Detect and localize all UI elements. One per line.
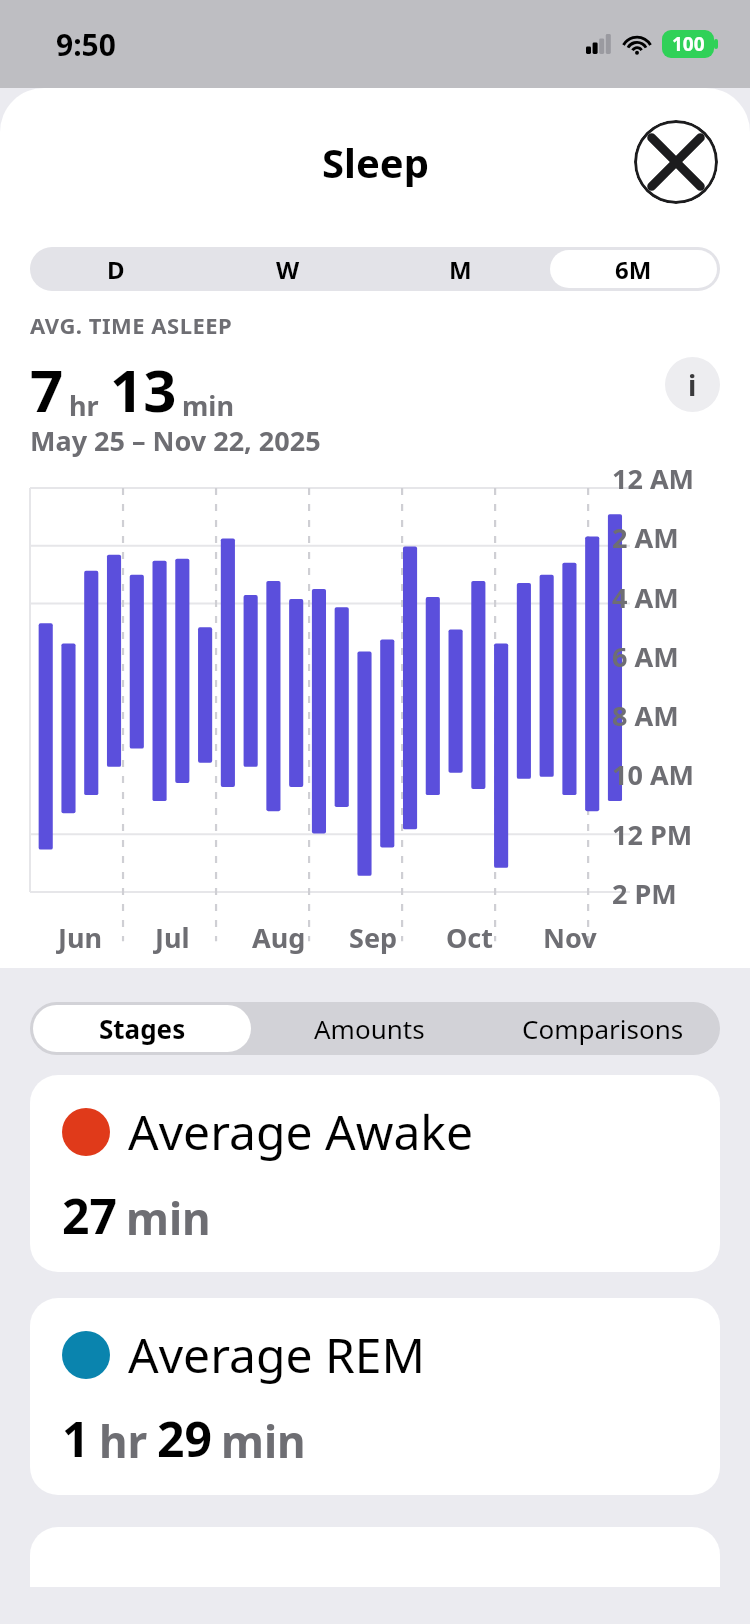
staticText: min: [126, 1188, 211, 1248]
staticText: 29: [157, 1406, 212, 1471]
staticText: Jul: [155, 919, 190, 956]
button[interactable]: Amounts: [254, 1002, 485, 1055]
staticText: 13: [110, 350, 177, 429]
staticText: 27: [62, 1183, 117, 1248]
staticText: Jun: [58, 919, 103, 956]
staticText: 1: [62, 1406, 90, 1471]
staticText: Comparisons: [522, 1011, 684, 1046]
staticText: min: [221, 1411, 306, 1471]
button[interactable]: Info: [665, 357, 720, 412]
staticText: M: [449, 253, 472, 286]
button[interactable]: 6M: [550, 250, 717, 288]
staticText: min: [182, 387, 234, 424]
staticText: 7: [30, 350, 64, 429]
staticText: 100: [672, 31, 705, 57]
staticText: Average Awake: [128, 1099, 474, 1164]
staticText: Nov: [543, 919, 597, 956]
staticText: 10 AM: [612, 756, 695, 793]
button[interactable]: Comparisons: [485, 1002, 720, 1055]
staticText: 12 AM: [612, 460, 695, 497]
staticText: hr: [99, 1411, 148, 1471]
staticText: 12 PM: [612, 816, 693, 853]
staticText: 9:50: [56, 24, 116, 65]
button[interactable]: Close: [634, 120, 718, 204]
staticText: 4 AM: [612, 579, 679, 616]
button[interactable]: Average REM: [30, 1298, 720, 1495]
staticText: AVG. TIME ASLEEP: [30, 310, 233, 340]
button[interactable]: M: [377, 250, 544, 288]
staticText: Stages: [99, 1011, 186, 1046]
staticText: 2 AM: [612, 519, 679, 556]
staticText: Amounts: [314, 1011, 425, 1046]
staticText: Sep: [349, 919, 398, 956]
button[interactable]: Stages: [33, 1005, 251, 1052]
staticText: Sleep: [322, 135, 429, 189]
staticText: 2 PM: [612, 875, 677, 912]
button[interactable]: W: [205, 250, 371, 288]
staticText: W: [276, 253, 300, 286]
staticText: 8 AM: [612, 697, 679, 734]
staticText: i: [688, 366, 697, 404]
staticText: 6 AM: [612, 638, 679, 675]
button[interactable]: D: [33, 250, 199, 288]
staticText: Aug: [252, 919, 306, 956]
staticText: Average REM: [128, 1322, 426, 1387]
staticText: Oct: [446, 919, 494, 956]
button[interactable]: Average Awake: [30, 1075, 720, 1272]
staticText: hr: [69, 387, 99, 424]
staticText: D: [107, 253, 125, 286]
staticText: May 25 – Nov 22, 2025: [30, 422, 321, 459]
staticText: 6M: [615, 253, 652, 286]
